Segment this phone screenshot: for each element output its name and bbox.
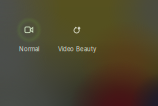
- staticText: Normal: [19, 45, 39, 53]
- staticText: Video Beauty: [58, 45, 96, 53]
- button[interactable]: Video Beauty: [53, 17, 101, 52]
- button[interactable]: Normal: [5, 17, 53, 52]
